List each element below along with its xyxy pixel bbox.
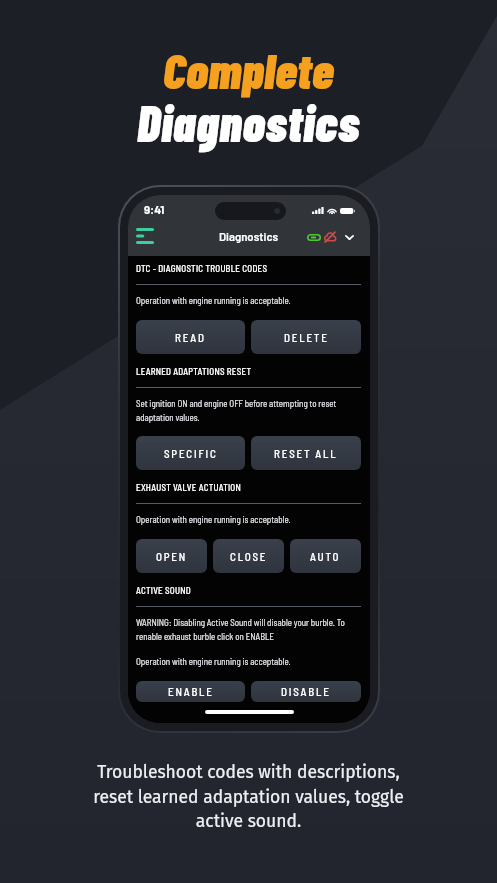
staticText: OPEN bbox=[156, 550, 188, 563]
staticText: DTC - DIAGNOSTIC TROUBLE CODES bbox=[136, 263, 268, 274]
staticText: DELETE bbox=[284, 331, 329, 344]
button[interactable]: OPEN bbox=[136, 539, 207, 573]
button[interactable]: Expand bbox=[342, 230, 356, 244]
staticText: AUTO bbox=[310, 550, 341, 563]
button[interactable]: ENABLE bbox=[136, 681, 245, 702]
staticText: Troubleshoot codes with descriptions, re… bbox=[0, 762, 497, 831]
staticText: SPECIFIC bbox=[164, 447, 218, 460]
staticText: 9:41 bbox=[144, 202, 165, 216]
staticText: Operation with engine running is accepta… bbox=[136, 514, 291, 525]
staticText: Diagnostics bbox=[0, 92, 497, 152]
staticText: READ bbox=[175, 331, 206, 344]
staticText: ENABLE bbox=[168, 685, 214, 698]
button[interactable]: READ bbox=[136, 320, 245, 354]
staticText: DISABLE bbox=[281, 685, 331, 698]
button[interactable]: AUTO bbox=[290, 539, 361, 573]
staticText: LEARNED ADAPTATIONS RESET bbox=[136, 366, 252, 377]
staticText: EXHAUST VALVE ACTUATION bbox=[136, 482, 242, 493]
staticText: RESET ALL bbox=[274, 447, 338, 460]
staticText: Operation with engine running is accepta… bbox=[136, 295, 291, 306]
button[interactable]: RESET ALL bbox=[251, 436, 361, 470]
button[interactable]: DELETE bbox=[251, 320, 361, 354]
staticText: ACTIVE SOUND bbox=[136, 585, 191, 596]
staticText: Set ignition ON and engine OFF before at… bbox=[136, 398, 357, 422]
button[interactable]: DISABLE bbox=[251, 681, 361, 702]
staticText: Operation with engine running is accepta… bbox=[136, 656, 291, 667]
staticText: Complete bbox=[0, 40, 497, 99]
button[interactable]: CLOSE bbox=[213, 539, 284, 573]
staticText: WARNING: Disabling Active Sound will dis… bbox=[136, 617, 357, 641]
button[interactable]: SPECIFIC bbox=[136, 436, 245, 470]
staticText: Diagnostics bbox=[219, 230, 279, 244]
button[interactable]: Menu bbox=[132, 223, 158, 249]
staticText: CLOSE bbox=[230, 550, 268, 563]
